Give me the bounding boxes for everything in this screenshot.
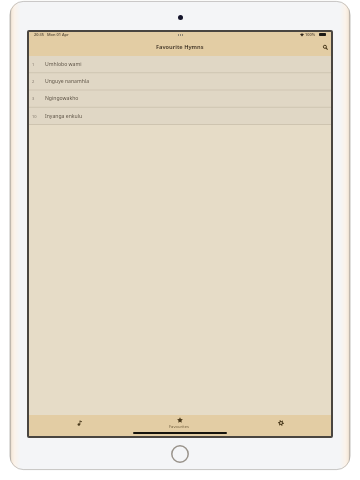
button[interactable]: 1 (29, 56, 331, 73)
staticText: Ngingowakho (45, 95, 79, 102)
staticText: 3 (32, 96, 35, 101)
staticText: Unguye nanamhla (45, 78, 90, 85)
staticText: Umhlobo wami (45, 61, 82, 68)
staticText: 1 (32, 62, 35, 67)
staticText: Favourite Hymns (156, 43, 204, 51)
button[interactable]: 3 (29, 90, 331, 107)
button[interactable]: Music (29, 415, 129, 431)
staticText: 2 (32, 79, 35, 84)
button[interactable]: Favourites (129, 415, 230, 431)
staticText: Favourites (169, 424, 190, 430)
button[interactable]: Settings (230, 415, 331, 431)
staticText: 10 (32, 114, 37, 119)
staticText: 100% (305, 32, 316, 37)
button[interactable]: Search (320, 42, 330, 52)
staticText: Inyanga enkulu (45, 113, 83, 120)
button[interactable]: 10 (29, 108, 331, 125)
staticText: Mon 01 Apr (47, 32, 69, 37)
button[interactable]: 2 (29, 73, 331, 90)
staticText: 20:35 (34, 32, 44, 37)
